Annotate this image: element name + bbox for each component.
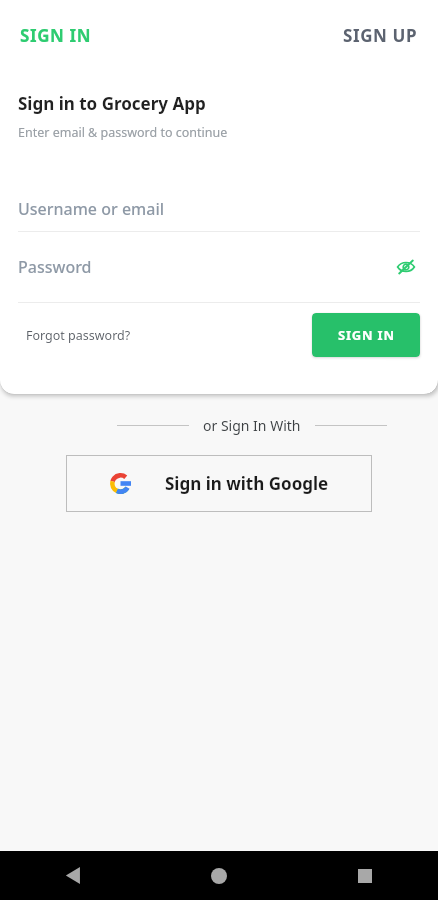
staticText: SIGN IN bbox=[338, 326, 395, 344]
button[interactable]: Forgot password? bbox=[26, 321, 131, 350]
staticText: Sign in with Google bbox=[165, 472, 329, 495]
button[interactable]: Back bbox=[0, 851, 146, 900]
button[interactable]: Username or email bbox=[0, 187, 438, 231]
button[interactable]: Toggle password visibility bbox=[392, 253, 420, 281]
button[interactable]: Home bbox=[146, 851, 292, 900]
staticText: SIGN UP bbox=[343, 24, 418, 47]
button[interactable]: SIGN IN bbox=[18, 18, 94, 53]
staticText: SIGN IN bbox=[20, 24, 92, 47]
button[interactable]: Recent apps bbox=[292, 851, 438, 900]
button[interactable]: SIGN IN bbox=[312, 313, 420, 357]
staticText: Username or email bbox=[18, 198, 165, 220]
button[interactable]: Password bbox=[0, 232, 438, 302]
button[interactable]: SIGN UP bbox=[341, 18, 420, 53]
staticText: Forgot password? bbox=[26, 327, 131, 344]
staticText: Password bbox=[18, 256, 92, 278]
staticText: or Sign In With bbox=[203, 416, 301, 435]
staticText: Enter email & password to continue bbox=[18, 124, 228, 141]
staticText: Sign in to Grocery App bbox=[18, 92, 206, 115]
button[interactable]: Sign in with Google bbox=[66, 455, 372, 512]
